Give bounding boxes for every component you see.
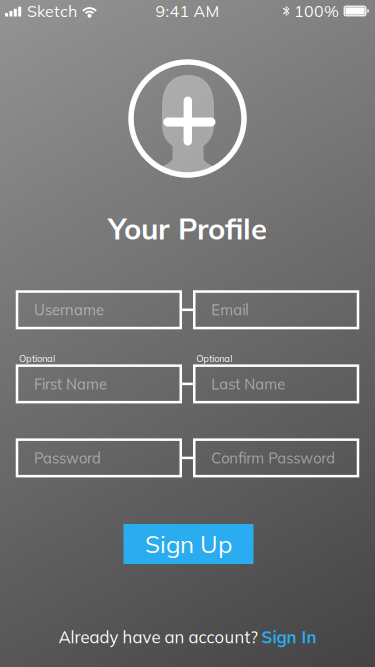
staticText: Already have an account? <box>58 626 261 647</box>
staticText: Optional <box>196 353 232 364</box>
button[interactable]: Email <box>194 292 358 328</box>
button[interactable]: Sign Up <box>123 524 253 564</box>
button[interactable]: Password <box>17 440 181 476</box>
staticText: First Name <box>34 375 107 393</box>
staticText: Sign Up <box>145 529 232 559</box>
staticText: Confirm Password <box>211 449 335 467</box>
button[interactable]: Last Name <box>194 366 358 402</box>
staticText: 9:41 AM <box>155 1 219 21</box>
staticText: Last Name <box>211 375 285 393</box>
staticText: Sign In <box>261 626 316 647</box>
staticText: Username <box>34 301 104 319</box>
button[interactable]: Sign In <box>261 626 316 647</box>
staticText: Sketch <box>27 1 77 21</box>
button[interactable]: First Name <box>17 366 181 402</box>
staticText: Email <box>211 301 248 319</box>
staticText: 100% <box>294 1 339 21</box>
staticText: Optional <box>19 353 55 364</box>
staticText: Your Profile <box>108 210 267 247</box>
button[interactable]: Username <box>17 292 181 328</box>
staticText: Password <box>34 449 101 467</box>
button[interactable]: Confirm Password <box>194 440 358 476</box>
